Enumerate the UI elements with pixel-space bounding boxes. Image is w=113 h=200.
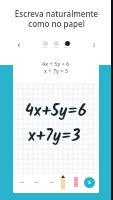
staticText: 4x + 5y = 6 <box>42 60 70 67</box>
staticText: x+7y=3 <box>28 124 81 150</box>
staticText: 4x+5y=6 <box>25 99 87 125</box>
button[interactable]: Back <box>14 40 23 49</box>
button[interactable]: Mode 1 <box>43 41 48 46</box>
button[interactable]: Select <box>46 177 56 187</box>
button[interactable]: Pen <box>58 174 68 190</box>
button[interactable]: More options <box>89 40 98 49</box>
button[interactable]: Undo <box>16 177 26 187</box>
button[interactable]: Send <box>84 177 95 188</box>
button[interactable]: Redo <box>31 177 41 187</box>
button[interactable]: Mode 3 <box>65 41 70 46</box>
staticText: x + 7y = 3 <box>44 67 69 74</box>
button[interactable]: Mode 2 <box>54 41 59 46</box>
button[interactable]: Eraser <box>71 174 81 190</box>
staticText: Escreva naturalmente como no papel <box>6 8 107 29</box>
